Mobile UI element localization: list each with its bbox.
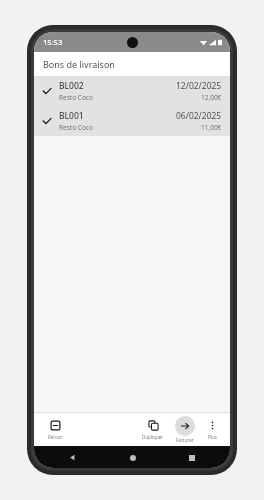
staticText: 11,00€ [201,123,222,132]
staticText: Resto Coco [59,93,93,102]
button[interactable]: Retour [44,417,67,442]
button[interactable]: BL001 [34,106,230,136]
staticText: 15:53 [43,37,63,47]
staticText: Resto Coco [59,123,93,132]
button[interactable]: Facturer [174,416,196,443]
staticText: BL002 [59,80,84,92]
staticText: Dupliquer [142,434,164,440]
button[interactable]: Back [64,449,81,466]
staticText: Facturer [176,437,194,443]
staticText: BL001 [59,110,84,122]
staticText: Retour [48,434,63,440]
other: Facturer [180,421,190,431]
other: Dupliquer [148,420,159,431]
staticText: Plus [208,434,217,440]
button[interactable]: Recent apps [184,450,200,466]
button[interactable]: Home [125,450,141,466]
staticText: 12/02/2025 [176,80,222,92]
other: Plus [207,420,218,431]
button[interactable]: BL002 [34,76,230,106]
button[interactable]: Plus [203,417,222,442]
staticText: Bons de livraison [43,58,115,70]
staticText: 06/02/2025 [176,110,222,122]
other: Retour [50,420,61,431]
staticText: 12,00€ [201,93,222,102]
button[interactable]: Dupliquer [139,417,167,442]
